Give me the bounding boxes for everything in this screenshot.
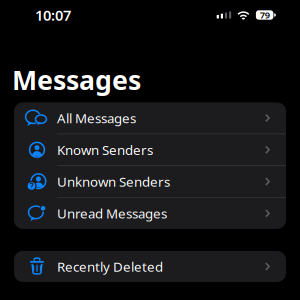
staticText: 79 — [260, 9, 270, 21]
staticText: Recently Deleted — [57, 258, 163, 275]
button[interactable]: Known Senders — [14, 134, 286, 165]
staticText: Unknown Senders — [57, 173, 170, 190]
staticText: All Messages — [57, 109, 136, 127]
staticText: 10:07 — [35, 5, 71, 25]
button[interactable]: Unread Messages — [14, 198, 286, 229]
button[interactable]: Unknown Senders — [14, 166, 286, 197]
staticText: Unread Messages — [57, 204, 167, 222]
staticText: Known Senders — [57, 141, 153, 159]
button[interactable]: Recently Deleted — [14, 251, 286, 282]
staticText: Messages — [12, 62, 141, 97]
button[interactable]: All Messages — [14, 102, 286, 133]
